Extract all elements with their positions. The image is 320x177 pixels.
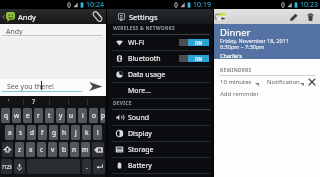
staticText: ON [195,56,203,62]
staticText: ON [195,40,203,46]
button[interactable] [92,142,104,157]
button[interactable]: Delete [303,10,317,24]
button[interactable]: Send [87,80,104,92]
staticText: e [26,111,30,120]
staticText: q [4,111,8,120]
staticText: g [52,128,56,137]
button[interactable]: i [78,108,87,123]
staticText: x [29,145,33,154]
button[interactable]: m [81,142,90,157]
staticText: REMINDERS [220,67,252,74]
button[interactable]: 10 minutes [219,77,261,88]
staticText: ?123 [2,164,12,170]
staticText: Andy [18,12,36,22]
button[interactable]: n [70,142,79,157]
button[interactable]: Notification [266,77,306,88]
staticText: i [82,111,84,120]
button[interactable]: Settings [107,9,213,24]
button[interactable]: e [23,108,32,123]
button[interactable]: Data usage [107,67,213,82]
button[interactable]: Edit [287,10,301,24]
staticText: l [97,128,99,137]
staticText: c [40,145,44,154]
button[interactable]: u [67,108,76,123]
button[interactable]: . [82,159,91,174]
button[interactable]: Storage [107,142,213,157]
button[interactable]: Back [0,9,106,24]
staticText: 10 minutes [220,78,252,86]
button[interactable] [93,159,105,174]
button[interactable]: t [45,108,54,123]
button[interactable]: Charlie's [220,52,242,59]
staticText: Sound [128,113,150,123]
staticText: Andy [6,27,23,37]
button[interactable]: ?123 [1,159,12,174]
staticText: ' [8,97,10,107]
staticText: 10:19 [193,0,211,9]
staticText: y [59,111,63,120]
staticText: w [14,111,20,120]
button[interactable]: o [89,108,98,123]
staticText: h [62,128,67,137]
button[interactable]: Display [107,126,213,141]
staticText: WIRELESS & NETWORKS [113,25,175,32]
staticText: j [75,128,77,137]
staticText: Friday, November 18, 2011 [220,37,289,44]
staticText: k [85,128,89,137]
button[interactable]: r [34,108,43,123]
button[interactable]: Edit [214,9,320,24]
button[interactable]: Bluetooth [107,51,213,66]
button[interactable]: Remove reminder [306,76,318,88]
staticText: 6:30pm – 7:30pm [220,43,265,50]
staticText: u [69,111,74,120]
button[interactable]: f [38,125,47,140]
staticText: Settings [129,12,158,22]
button[interactable]: Sound [107,110,213,125]
button[interactable]: a [5,125,14,140]
staticText: p [101,111,105,120]
button[interactable]: c [37,142,46,157]
button[interactable]: k [82,125,91,140]
staticText: . [86,162,88,171]
button[interactable] [14,159,25,174]
staticText: Display [128,129,152,139]
staticText: DEVICE [113,100,132,107]
button[interactable]: Wi-Fi [107,35,213,50]
button[interactable]: z [15,142,24,157]
button[interactable]: More... [107,83,213,98]
staticText: Wi-Fi [128,38,145,48]
other: Back [2,14,5,20]
staticText: Dinner [220,26,251,39]
button[interactable]: s [16,125,25,140]
staticText: Bluetooth [128,54,161,64]
staticText: o [92,111,96,120]
button[interactable]: p [100,108,105,123]
button[interactable]: d [27,125,36,140]
staticText: 10:23 [300,0,318,9]
button[interactable]: Battery [107,158,213,173]
staticText: b [62,145,66,154]
staticText: 10:24 [86,0,104,9]
staticText: d [30,128,34,137]
button[interactable]: q [1,108,10,123]
staticText: m [82,145,89,154]
button[interactable]: j [71,125,80,140]
staticText: v [51,145,55,154]
button[interactable]: x [26,142,35,157]
staticText: s [19,128,23,137]
button[interactable]: Add reminder [220,90,259,98]
staticText: Storage [128,145,154,155]
button[interactable]: g [49,125,58,140]
button[interactable]: w [12,108,21,123]
staticText: r [37,111,40,120]
button[interactable]: h [60,125,69,140]
button[interactable]: Attach [90,9,105,24]
button[interactable]: b [59,142,68,157]
staticText: a [8,128,12,137]
button[interactable]: y [56,108,65,123]
button[interactable]: l [93,125,102,140]
button[interactable] [2,142,13,157]
staticText: z [18,145,22,154]
button[interactable]: v [48,142,57,157]
